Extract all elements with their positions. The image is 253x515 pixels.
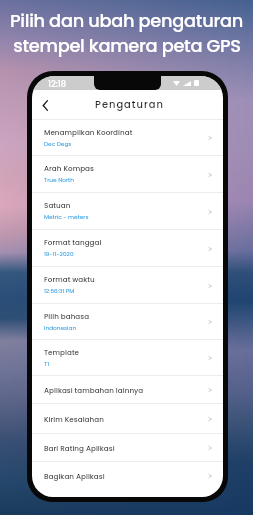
staticText: Indonesian [44,324,77,332]
staticText: Pilih dan ubah pengaturan [10,8,243,33]
staticText: 19-11-2020 [44,250,74,258]
button[interactable]: Kirim Kesalahan [32,404,223,434]
staticText: 12:18 [48,78,67,90]
staticText: Satuan [44,200,71,210]
button[interactable]: Satuan [32,193,223,230]
staticText: Metric - meters [44,213,89,221]
button[interactable]: Back [35,95,55,115]
staticText: Bagikan Aplikasi [44,471,105,481]
staticText: Arah Kompas [44,163,94,173]
staticText: stempel kamera peta GPS [13,33,241,58]
staticText: Format tanggal [44,237,102,247]
button[interactable]: Menampilkan Koordinat [32,120,223,156]
staticText: True North [44,176,74,184]
staticText: Pengaturan [95,98,164,112]
button[interactable]: Format tanggal [32,230,223,267]
staticText: Template [44,347,80,357]
staticText: Menampilkan Koordinat [44,127,133,137]
staticText: Dec Degs [44,140,72,148]
staticText: Bari Rating Aplikasi [44,443,115,453]
button[interactable]: Arah Kompas [32,156,223,193]
button[interactable]: Aplikasi tambahan lainnya [32,376,223,404]
button[interactable]: Bari Rating Aplikasi [32,434,223,462]
button[interactable]: Template [32,340,223,376]
staticText: 12:56:31 PM [44,287,75,295]
button[interactable]: Format waktu [32,267,223,304]
button[interactable]: Bagikan Aplikasi [32,462,223,489]
staticText: Aplikasi tambahan lainnya [44,385,144,395]
button[interactable]: Pilih bahasa [32,304,223,340]
staticText: Kirim Kesalahan [44,414,104,424]
staticText: T1 [44,360,49,368]
staticText: Pilih bahasa [44,311,90,321]
staticText: Format waktu [44,274,95,284]
